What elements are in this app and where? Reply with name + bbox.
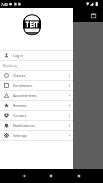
button[interactable]: Home (44, 169, 58, 183)
staticText: 7:40 (1, 2, 8, 7)
button[interactable]: Appointments (0, 91, 73, 100)
button[interactable]: Classes (0, 71, 73, 80)
staticText: Contact (13, 113, 27, 118)
button[interactable]: Settings (0, 131, 73, 140)
button[interactable]: Enrolments (0, 81, 73, 90)
staticText: Classes (13, 73, 26, 78)
staticText: Enrolments (13, 83, 33, 88)
staticText: Log in (13, 53, 24, 58)
button[interactable]: Log in (0, 51, 73, 60)
staticText: Settings (13, 133, 27, 138)
button[interactable]: Calendar (90, 12, 97, 19)
staticText: Notifications (13, 123, 35, 128)
staticText: Appointments (13, 93, 37, 98)
button[interactable]: Reviews (0, 101, 73, 110)
button[interactable]: Contact (0, 111, 73, 120)
button[interactable]: Recents (72, 169, 86, 183)
button[interactable]: Back (17, 169, 31, 183)
staticText: Booking (3, 63, 17, 68)
staticText: Reviews (13, 103, 27, 108)
button[interactable]: Notifications (0, 121, 73, 130)
